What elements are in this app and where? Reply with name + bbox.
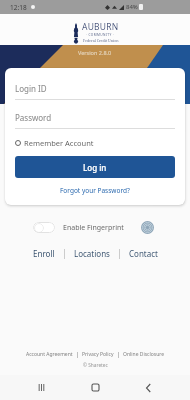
staticText: Log in bbox=[83, 162, 107, 173]
button[interactable]: Online Disclosure bbox=[119, 351, 169, 358]
staticText: Version 2.8.0 bbox=[78, 49, 112, 56]
button[interactable]: Home bbox=[83, 375, 108, 400]
button[interactable]: Fingerprint login bbox=[141, 221, 154, 234]
staticText: 84% bbox=[126, 3, 138, 11]
button[interactable]: Remember Account bbox=[15, 136, 94, 150]
staticText: © Sharetec bbox=[83, 362, 108, 369]
button[interactable]: Recent apps bbox=[29, 375, 54, 400]
staticText: · COMMUNITY · bbox=[86, 33, 115, 37]
staticText: AUBURN bbox=[82, 21, 119, 33]
button[interactable]: Privacy Policy bbox=[78, 351, 118, 358]
staticText: Remember Account bbox=[24, 138, 94, 148]
button[interactable]: Enroll bbox=[24, 246, 64, 261]
button[interactable]: Contact bbox=[120, 246, 167, 261]
staticText: Password bbox=[15, 112, 52, 123]
staticText: 12:18 bbox=[10, 3, 27, 12]
staticText: Enable Fingerprint bbox=[63, 223, 124, 233]
button[interactable]: Forgot your Password? bbox=[60, 186, 130, 195]
staticText: Federal Credit Union bbox=[83, 38, 119, 43]
button[interactable]: Back bbox=[136, 375, 161, 400]
button[interactable]: Log in bbox=[15, 156, 175, 178]
staticText: Login ID bbox=[15, 83, 47, 94]
button[interactable]: Locations bbox=[65, 246, 119, 261]
button[interactable] bbox=[33, 222, 55, 233]
button[interactable]: Account Agreement bbox=[22, 351, 77, 358]
